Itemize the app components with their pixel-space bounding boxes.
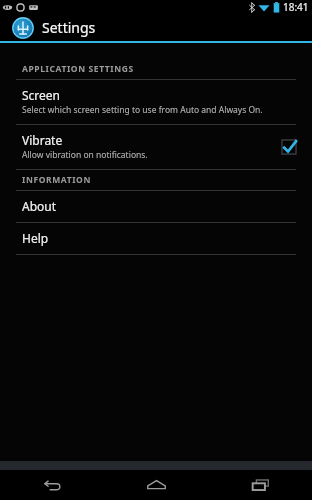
staticText: Help [22, 230, 49, 246]
button[interactable]: Vibrate enabled [280, 138, 298, 156]
button[interactable]: Recent apps [208, 470, 312, 500]
staticText: INFORMATION [22, 174, 91, 186]
button[interactable]: Settings [0, 14, 312, 41]
button[interactable]: Screen [0, 80, 312, 124]
staticText: Select which screen setting to use from … [22, 104, 263, 116]
staticText: 18:41 [283, 0, 309, 14]
button[interactable]: About [0, 191, 312, 222]
staticText: APPLICATION SETTINGS [22, 63, 134, 75]
staticText: Vibrate [22, 132, 63, 148]
button[interactable]: Vibrate [0, 125, 312, 169]
button[interactable]: Back [0, 470, 104, 500]
staticText: Screen [22, 87, 61, 103]
staticText: Settings [42, 18, 96, 37]
staticText: Allow vibration on notifications. [22, 149, 148, 161]
staticText: About [22, 198, 57, 214]
button[interactable]: Home [104, 470, 208, 500]
button[interactable]: Help [0, 223, 312, 254]
